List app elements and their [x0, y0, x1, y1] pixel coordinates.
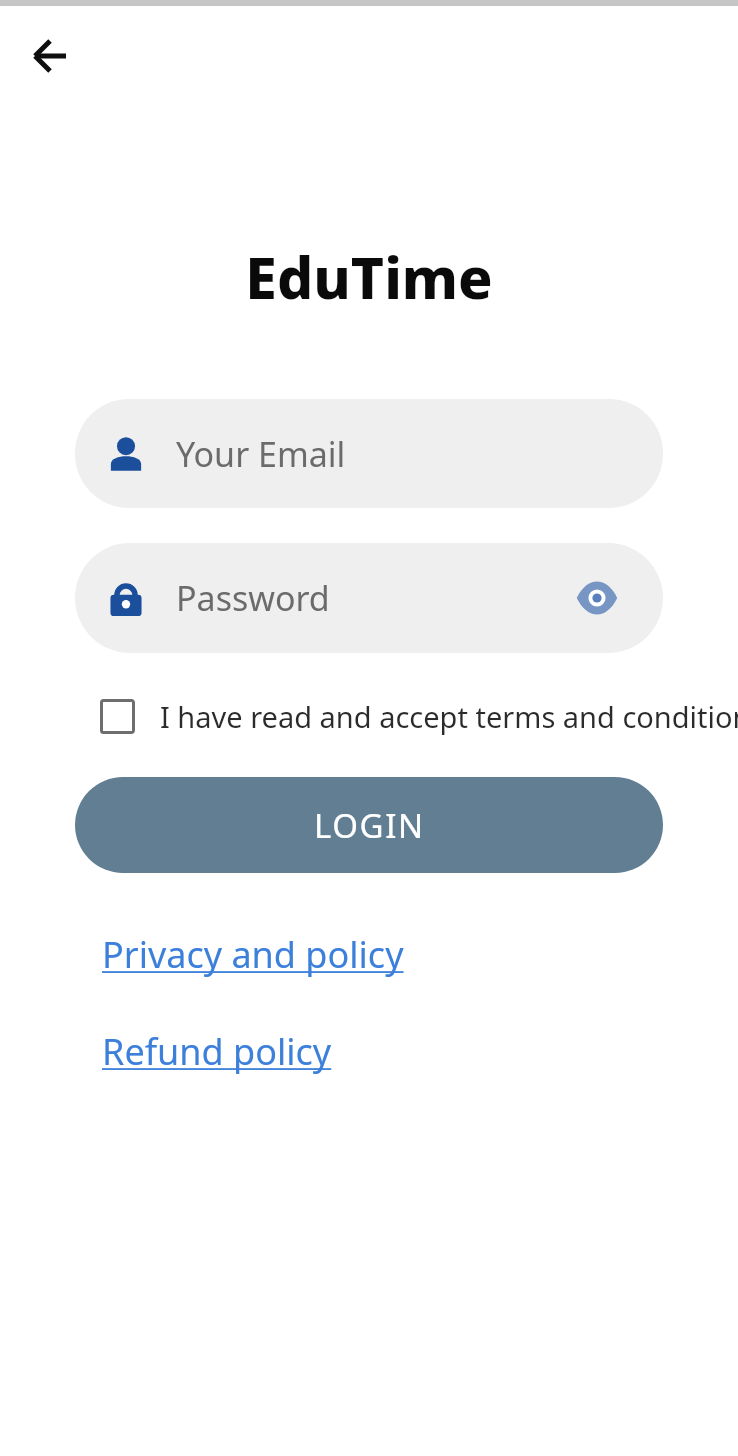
button[interactable]: Privacy and policy: [96, 924, 410, 985]
staticText: I have read and accept terms and conditi…: [160, 697, 738, 736]
staticText: Your Email: [176, 431, 346, 477]
button[interactable]: I have read and accept terms and conditi…: [96, 692, 738, 740]
staticText: Privacy and policy: [102, 930, 404, 979]
staticText: Refund policy: [102, 1027, 332, 1076]
button[interactable]: Show password: [573, 574, 621, 622]
staticText: EduTime: [245, 238, 493, 316]
staticText: LOGIN: [314, 803, 425, 848]
staticText: Password: [176, 575, 330, 621]
button[interactable]: Password: [75, 543, 663, 653]
button[interactable]: Refund policy: [96, 1021, 338, 1082]
button[interactable]: LOGIN: [75, 777, 663, 873]
button[interactable]: Back: [20, 26, 80, 86]
button[interactable]: Your Email: [75, 399, 663, 508]
